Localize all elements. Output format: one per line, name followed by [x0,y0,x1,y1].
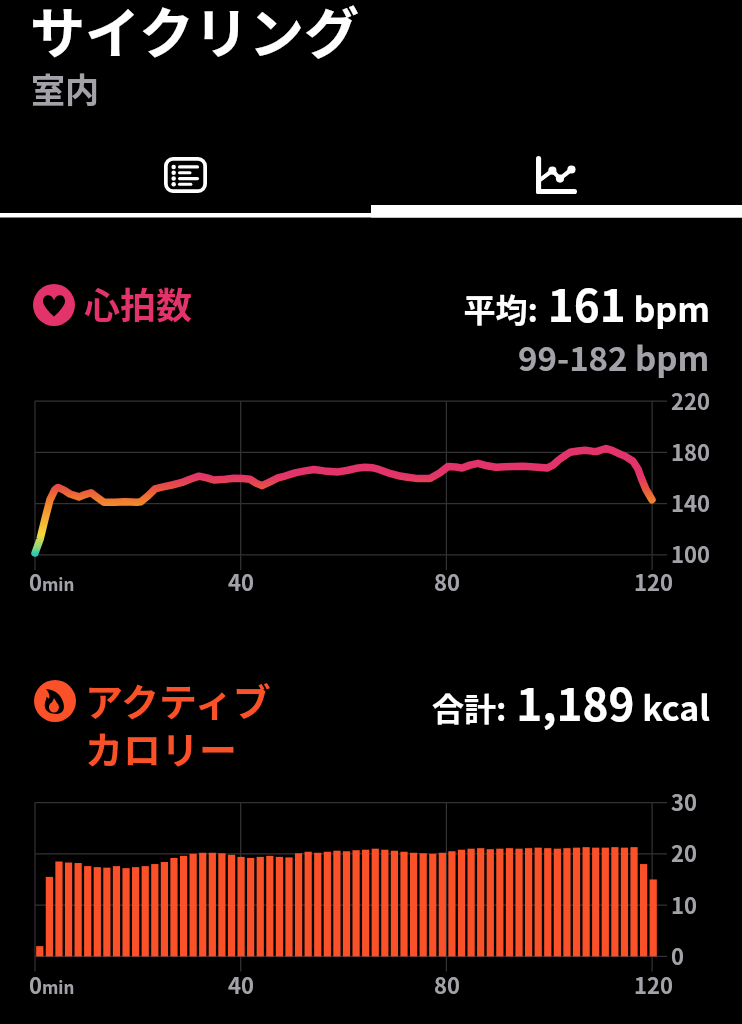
staticText: 心拍数 [84,277,193,329]
staticText: 220 [671,384,710,416]
staticText: サイクリング [30,0,359,69]
staticText: 100 [671,537,710,569]
staticText: 0min [29,565,75,597]
staticText: 120 [634,565,673,597]
staticText: 30 [671,785,697,817]
staticText: 80 [434,968,460,1000]
staticText: 平均: 161 bpm [463,271,710,335]
staticText: 0 [671,939,684,971]
staticText: 室内 [31,64,99,113]
staticText: 120 [634,968,673,1000]
staticText: 40 [228,968,254,1000]
staticText: 80 [434,565,460,597]
staticText: 140 [671,486,710,518]
staticText: 合計: 1,189 kcal [431,670,710,734]
button[interactable]: アクティブ カロリー [0,655,742,1000]
button[interactable]: 心拍数 [0,255,742,605]
staticText: 99-182 bpm [518,333,710,381]
staticText: 20 [671,836,697,868]
staticText: 0min [29,968,75,1000]
staticText: 40 [228,565,254,597]
staticText: 10 [671,888,697,920]
staticText: 180 [671,435,710,467]
staticText: アクティブ カロリー [85,672,271,775]
button[interactable]: Charts [371,137,742,213]
button[interactable]: Summary [0,137,371,213]
